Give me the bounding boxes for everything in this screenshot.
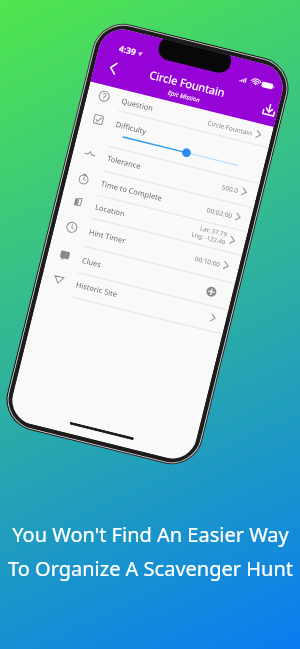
button[interactable]: Location: [58, 186, 248, 256]
staticText: Clues: [81, 255, 103, 269]
staticText: Hint Timer: [88, 227, 127, 246]
staticText: 00:02:00: [206, 205, 233, 220]
button[interactable]: Back: [102, 57, 126, 81]
button[interactable]: Question: [85, 81, 274, 147]
staticText: Lng: -122.40: [191, 230, 227, 247]
staticText: Circle Fountain: [207, 118, 254, 138]
button[interactable]: Tolerance: [70, 138, 260, 207]
staticText: Time to Complete: [100, 178, 164, 203]
staticText: Location: [94, 202, 127, 219]
staticText: To Organize A Scavenger Hunt: [8, 555, 293, 582]
button[interactable]: Add clue: [205, 286, 217, 298]
staticText: Historic Site: [75, 279, 118, 299]
staticText: You Won't Find An Easier Way: [12, 521, 289, 548]
button[interactable]: Time to Complete: [64, 162, 254, 232]
button[interactable]: Historic Site: [39, 264, 229, 334]
button[interactable]: Difficulty: [76, 102, 269, 183]
staticText: Lat: 37.79: [199, 224, 228, 239]
staticText: Difficulty: [115, 119, 148, 136]
staticText: Circle Fountain: [148, 67, 227, 100]
staticText: 500.0: [221, 182, 240, 195]
staticText: Epic Mission: [167, 89, 201, 104]
staticText: Tolerance: [106, 153, 142, 171]
button[interactable]: Download: [259, 99, 280, 121]
button[interactable]: Clues: [45, 238, 235, 309]
staticText: 4:39: [118, 43, 137, 58]
staticText: Question: [120, 96, 155, 113]
staticText: 00:10:00: [194, 254, 221, 269]
button[interactable]: Hint Timer: [52, 210, 242, 283]
